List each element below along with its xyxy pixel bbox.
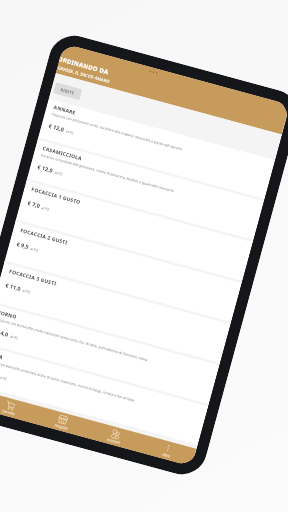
staticText: € 14,0 (0, 327, 9, 338)
staticText: al PZ (54, 170, 63, 177)
button[interactable]: BIBITE (53, 82, 83, 100)
button[interactable]: Negozio (34, 406, 91, 438)
button[interactable]: FOCACCIA 1 GUSTO (15, 181, 252, 283)
button[interactable]: CASAMICCIOLA (27, 140, 264, 242)
staticText: € 12,0 (48, 122, 65, 133)
staticText: al PZ (22, 288, 31, 295)
staticText: Focaccia con prosciutto cotto, zucchine … (51, 112, 183, 152)
staticText: € 12,0 (37, 163, 54, 174)
staticText: al PZ (9, 334, 18, 341)
staticText: PANCHE GRASSE, IL SACCO AMARO (57, 64, 111, 84)
button[interactable]: Altro (139, 434, 196, 466)
staticText: € 9,5 (16, 240, 30, 251)
staticText: FOCACCIA 3 GUSTI (8, 268, 57, 287)
button[interactable]: FOCACCIA 2 GUSTI (4, 222, 241, 324)
staticText: al PZ (65, 129, 74, 136)
staticText: PESCA (0, 350, 4, 361)
staticText: ANNARE (53, 103, 76, 116)
staticText: al PZ (30, 246, 39, 253)
staticText: al PZ (41, 205, 50, 212)
staticText: Focaccia con patate alla genovese, crema… (40, 153, 175, 194)
staticText: FOCACCIA 1 GUSTO (31, 186, 82, 206)
staticText: Focaccia con prosciutto crudo nazionale … (0, 317, 148, 363)
staticText: € 11,0 (5, 281, 22, 292)
button[interactable]: FOCACCIA 3 GUSTI (0, 263, 230, 365)
staticText: STAI ORDINANDO DA (59, 55, 109, 76)
staticText: FOCACCIA 2 GUSTI (19, 227, 69, 246)
staticText: Altro (162, 452, 171, 459)
staticText: Account (106, 437, 121, 445)
button[interactable]: Account (86, 420, 144, 452)
button[interactable]: Carrello (0, 391, 38, 424)
staticText: BIBITE (60, 87, 75, 96)
button[interactable]: FORNO (0, 304, 219, 406)
button[interactable]: CAPRESE (0, 386, 197, 449)
staticText: al PZ (0, 375, 7, 382)
button[interactable]: ANNARE (38, 99, 275, 201)
staticText: Carrello (2, 409, 16, 417)
button[interactable]: PESCA (0, 345, 208, 447)
staticText: Focaccia con pancetta arrotolata dolce d… (0, 358, 135, 403)
staticText: Negozio (54, 423, 69, 431)
staticText: FORNO (0, 309, 17, 320)
staticText: CASAMICCIOLA (42, 144, 83, 162)
staticText: € 7,0 (27, 199, 41, 210)
